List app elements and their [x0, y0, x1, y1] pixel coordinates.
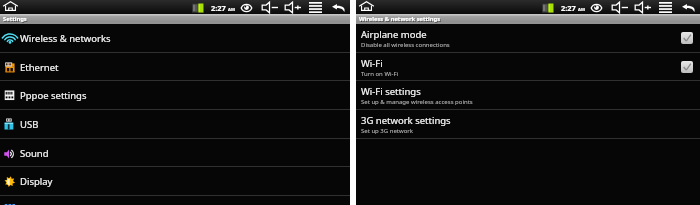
button[interactable]: USB	[0, 110, 350, 138]
staticText: AM	[228, 7, 235, 13]
staticText: Settings	[3, 15, 27, 23]
staticText: 3G network settings	[361, 114, 451, 127]
staticText: 2:27	[561, 3, 576, 13]
button[interactable]: Volume up	[284, 2, 301, 13]
staticText: Sound	[20, 147, 49, 160]
button[interactable]: Menu	[309, 2, 322, 13]
button[interactable]: Back	[682, 4, 695, 12]
button[interactable]: Accounts & sync	[0, 196, 350, 205]
staticText: Wireless & networks	[20, 32, 111, 45]
button[interactable]: Home	[359, 1, 374, 11]
button[interactable]: Airplane mode	[356, 24, 700, 52]
staticText: Ethernet	[20, 61, 59, 74]
button[interactable]: Wireless & networks	[0, 24, 350, 52]
staticText: Set up & manage wireless access points	[361, 98, 473, 106]
staticText: Wireless & network settings	[360, 16, 442, 24]
button[interactable]: Sound	[0, 139, 350, 167]
staticText: Wi-Fi settings	[361, 85, 421, 98]
button[interactable]: Volume up	[634, 2, 651, 13]
staticText: Set up 3G network	[361, 127, 414, 135]
button[interactable]: Menu	[659, 2, 672, 13]
button[interactable]: Volume down	[261, 2, 278, 13]
button[interactable]: Display	[0, 167, 350, 195]
staticText: Settings	[4, 16, 28, 24]
staticText: Disable all wireless connections	[361, 41, 450, 49]
staticText: AM	[578, 7, 585, 13]
button[interactable]: Home	[3, 1, 18, 11]
button[interactable]: Wi-Fi settings	[356, 81, 700, 109]
button[interactable]: 3G network settings	[356, 110, 700, 138]
button[interactable]: Screenshot	[241, 3, 252, 13]
button[interactable]: Toggle	[681, 32, 693, 44]
button[interactable]: Screenshot	[591, 3, 602, 13]
button[interactable]: Pppoe settings	[0, 81, 350, 109]
staticText: 2:27	[211, 3, 226, 13]
staticText: Airplane mode	[361, 28, 427, 41]
staticText: Wi-Fi	[361, 57, 383, 70]
staticText: USB	[20, 118, 39, 131]
button[interactable]: Wi-Fi	[356, 53, 700, 81]
staticText: Pppoe settings	[20, 89, 87, 102]
button[interactable]: Ethernet	[0, 53, 350, 81]
staticText: Turn on Wi-Fi	[361, 70, 399, 78]
button[interactable]: Toggle	[681, 61, 693, 73]
staticText: Display	[20, 175, 53, 188]
staticText: Wireless & network settings	[359, 15, 441, 23]
button[interactable]: Volume down	[611, 2, 628, 13]
button[interactable]: Back	[332, 4, 345, 12]
